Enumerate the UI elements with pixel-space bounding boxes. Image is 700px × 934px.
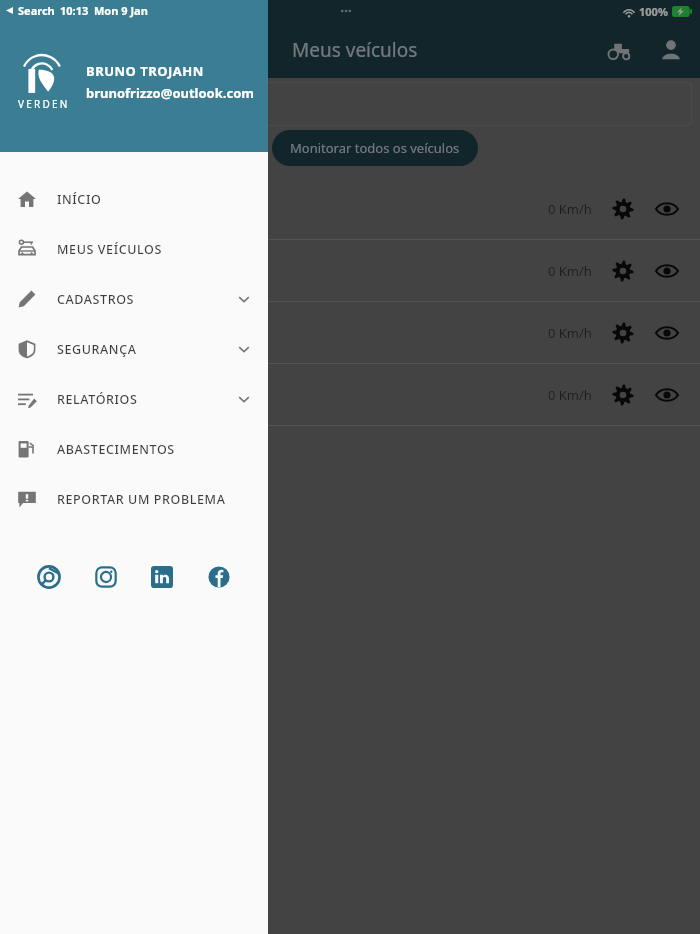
button[interactable]: Vehicles: [604, 35, 634, 65]
button[interactable]: Chrome: [34, 562, 64, 592]
staticText: 0 Km/h: [548, 200, 592, 218]
staticText: 10:13: [60, 3, 89, 18]
staticText: brunofrizzo@outlook.com: [86, 84, 254, 102]
staticText: 0 Km/h: [548, 262, 592, 280]
button[interactable]: Facebook: [204, 562, 234, 592]
button[interactable]: View: [654, 382, 680, 408]
button[interactable]: MEUS VEÍCULOS: [0, 224, 268, 274]
button[interactable]: 0 Km/h: [0, 364, 700, 426]
button[interactable]: View: [654, 196, 680, 222]
button[interactable]: 0 Km/h: [0, 302, 700, 364]
button[interactable]: Instagram: [91, 562, 121, 592]
staticText: CADASTROS: [57, 291, 135, 308]
button[interactable]: RELATÓRIOS: [0, 374, 268, 424]
button[interactable]: CADASTROS: [0, 274, 268, 324]
staticText: Monitorar todos os veículos: [290, 139, 460, 157]
staticText: REPORTAR UM PROBLEMA: [57, 491, 226, 508]
button[interactable]: 0 Km/h: [0, 240, 700, 302]
button[interactable]: SEGURANÇA: [0, 324, 268, 374]
staticText: BRUNO TROJAHN: [86, 62, 204, 80]
staticText: 100%: [639, 4, 668, 19]
button[interactable]: ABASTECIMENTOS: [0, 424, 268, 474]
staticText: Mon 9 Jan: [94, 3, 148, 18]
button[interactable]: Settings: [610, 196, 636, 222]
staticText: 0 Km/h: [548, 324, 592, 342]
button[interactable]: Settings: [610, 382, 636, 408]
staticText: SEGURANÇA: [57, 341, 137, 358]
staticText: Meus veículos: [292, 37, 418, 63]
button[interactable]: 0 Km/h: [0, 178, 700, 240]
button[interactable]: INÍCIO: [0, 174, 268, 224]
staticText: Search: [18, 3, 55, 18]
staticText: VERDEN: [18, 97, 70, 111]
button[interactable]: REPORTAR UM PROBLEMA: [0, 474, 268, 524]
staticText: RELATÓRIOS: [57, 391, 138, 408]
button[interactable]: Monitorar todos os veículos: [272, 130, 478, 166]
staticText: MEUS VEÍCULOS: [57, 241, 162, 258]
button[interactable]: View: [654, 258, 680, 284]
staticText: ABASTECIMENTOS: [57, 441, 175, 458]
button[interactable]: Settings: [610, 320, 636, 346]
button[interactable]: [8, 82, 692, 126]
button[interactable]: Settings: [610, 258, 636, 284]
button[interactable]: LinkedIn: [147, 562, 177, 592]
button[interactable]: View: [654, 320, 680, 346]
staticText: 0 Km/h: [548, 386, 592, 404]
button[interactable]: Profile: [656, 35, 686, 65]
staticText: INÍCIO: [57, 191, 102, 208]
